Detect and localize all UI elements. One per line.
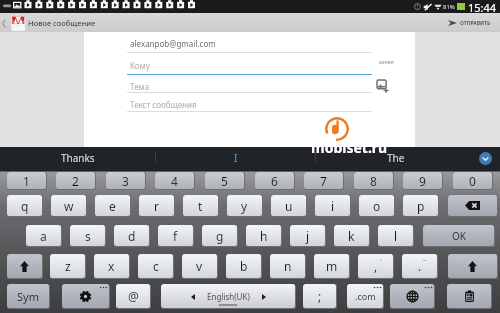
button[interactable]: Sym [7,284,49,308]
button[interactable]: v [182,254,217,278]
button[interactable]: clip [447,284,491,308]
staticText: 81% [443,3,455,11]
staticText: Тема [130,81,150,92]
button[interactable]: y [227,195,262,216]
staticText: c [153,258,159,274]
staticText: , [374,258,378,274]
staticText: English(UK) [207,291,250,302]
button[interactable]: I [156,147,315,168]
button[interactable]: q [7,195,42,216]
staticText: Thanks [61,151,95,165]
staticText: @ [128,288,139,304]
button[interactable]: w [51,195,86,216]
staticText: .com [355,290,376,302]
button[interactable]: копия [379,59,394,66]
button[interactable]: The [316,147,475,168]
button[interactable]: Attach picture [377,80,389,92]
button[interactable]: a [26,225,61,246]
button[interactable]: 3 [106,172,145,189]
staticText: w [64,198,74,214]
button[interactable]: Space, English (UK) [161,284,295,308]
staticText: - [380,256,382,264]
staticText: Текст сообщения [130,99,197,110]
staticText: 2 [72,173,79,189]
button[interactable]: , [358,254,393,278]
staticText: v [196,258,203,274]
button[interactable]: shift [7,254,42,278]
staticText: mobiset.ru [311,138,388,157]
staticText: o [373,198,381,214]
staticText: x [108,258,115,274]
staticText: 8 [370,173,377,189]
button[interactable]: OK [423,225,494,246]
staticText: g [216,228,224,244]
staticText: f [173,228,178,244]
staticText: 6 [271,173,278,189]
button[interactable]: f [158,225,193,246]
button[interactable]: p [403,195,438,216]
button[interactable]: b [226,254,261,278]
staticText: j [306,228,310,244]
button[interactable]: Expand suggestions [479,152,492,165]
staticText: t [198,198,203,214]
button[interactable]: h [246,225,281,246]
staticText: ; [318,288,322,304]
button[interactable]: g [202,225,237,246]
button[interactable]: z [50,254,85,278]
staticText: . [418,258,422,274]
button[interactable]: s [70,225,105,246]
staticText: i [331,198,335,214]
button[interactable]: j [290,225,325,246]
staticText: 7 [320,173,327,189]
button[interactable]: Новое сообщение [0,15,96,31]
button[interactable]: o [359,195,394,216]
button[interactable]: r [139,195,174,216]
button[interactable]: l [378,225,413,246]
button[interactable]: .com [347,284,383,308]
staticText: b [240,258,248,274]
staticText: – [423,256,427,264]
button[interactable]: . [402,254,437,278]
button[interactable]: 7 [304,172,343,189]
button[interactable]: shift [448,254,497,278]
button[interactable]: m [314,254,349,278]
button[interactable]: i [315,195,350,216]
button[interactable]: Thanks [0,147,155,168]
button[interactable]: 9 [403,172,442,189]
button[interactable]: 5 [205,172,244,189]
staticText: m [326,258,338,274]
staticText: Sym [17,289,39,304]
button[interactable]: ; [303,284,336,308]
button[interactable]: d [114,225,149,246]
button[interactable]: n [270,254,305,278]
staticText: q [21,198,29,214]
button[interactable]: bksp [448,195,497,216]
button[interactable]: ОТПРАВИТЬ [448,19,491,27]
button[interactable]: k [334,225,369,246]
staticText: l [394,228,398,244]
button[interactable]: x [94,254,129,278]
staticText: 15:44 [468,0,497,13]
button[interactable]: 4 [155,172,194,189]
button[interactable]: t [183,195,218,216]
staticText: alexanpob@gmail.com [130,38,216,49]
staticText: u [285,198,293,214]
staticText: d [128,228,136,244]
staticText: 9 [419,173,426,189]
staticText: z [65,258,71,274]
button[interactable]: gear [62,284,109,308]
button[interactable]: 6 [255,172,294,189]
button[interactable]: 2 [56,172,95,189]
button[interactable]: e [95,195,130,216]
button[interactable]: 1 [7,172,46,189]
staticText: r [154,198,159,214]
staticText: 5 [221,173,228,189]
button[interactable]: u [271,195,306,216]
button[interactable]: globe [390,284,434,308]
staticText: h [260,228,268,244]
button[interactable]: c [138,254,173,278]
button[interactable]: 8 [354,172,393,189]
button[interactable]: 0 [453,172,492,189]
staticText: k [348,228,355,244]
button[interactable]: @ [116,284,150,308]
